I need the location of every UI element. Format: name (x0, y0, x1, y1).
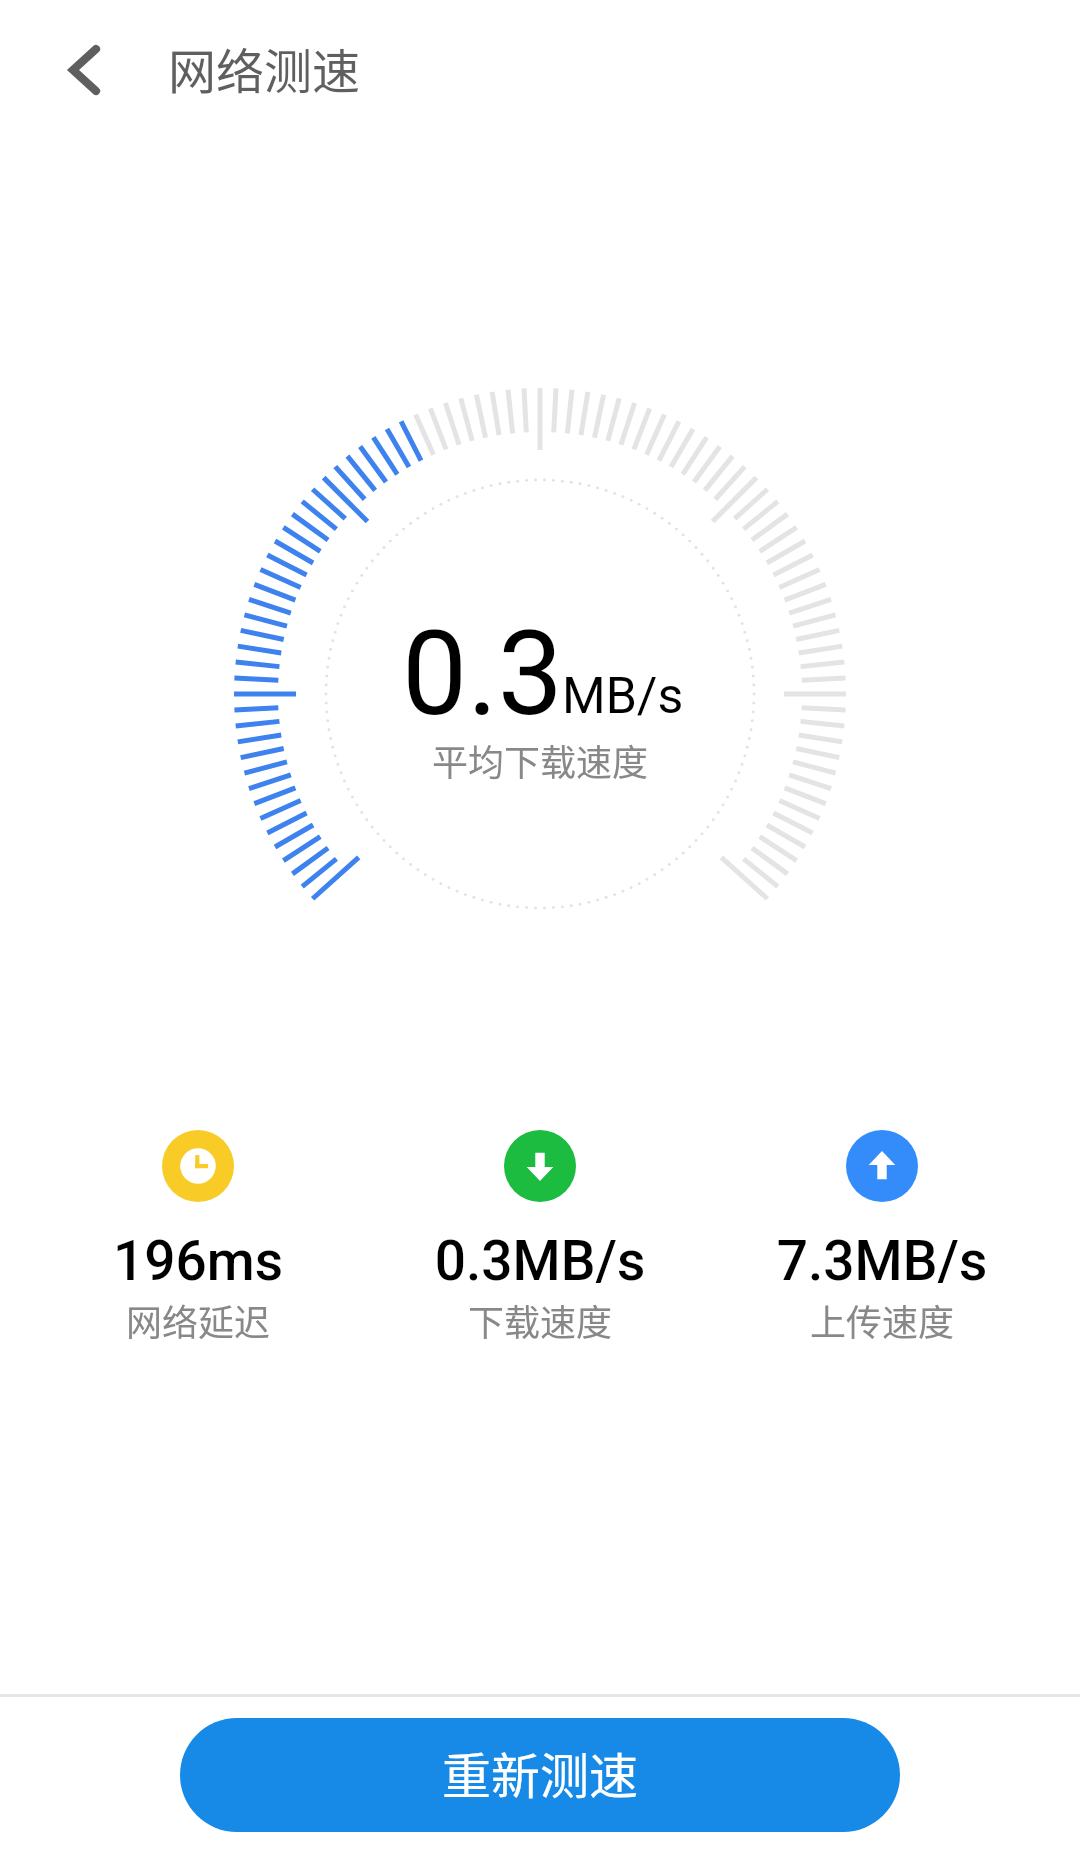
staticText: 上传速度 (742, 1294, 1022, 1346)
staticText: 7.3MB/s (742, 1229, 1022, 1293)
staticText: 196ms (58, 1229, 338, 1293)
staticText: 平均下载速度 (0, 734, 1080, 786)
staticText: 下载速度 (400, 1294, 680, 1346)
staticText: 重新测速 (442, 1737, 639, 1808)
staticText: 0.3MB/s (400, 1229, 680, 1293)
button[interactable]: Back (18, 3, 152, 137)
button[interactable]: 0.3MB/s (400, 1118, 680, 1358)
staticText: 网络延迟 (58, 1294, 338, 1346)
button[interactable]: 7.3MB/s (742, 1118, 1022, 1358)
button[interactable]: 重新测速 (180, 1718, 900, 1832)
staticText: 网络测速 (168, 33, 361, 103)
staticText: MB/s (562, 667, 684, 726)
button[interactable]: 196ms (58, 1118, 338, 1358)
staticText: 0.3 (402, 606, 563, 742)
